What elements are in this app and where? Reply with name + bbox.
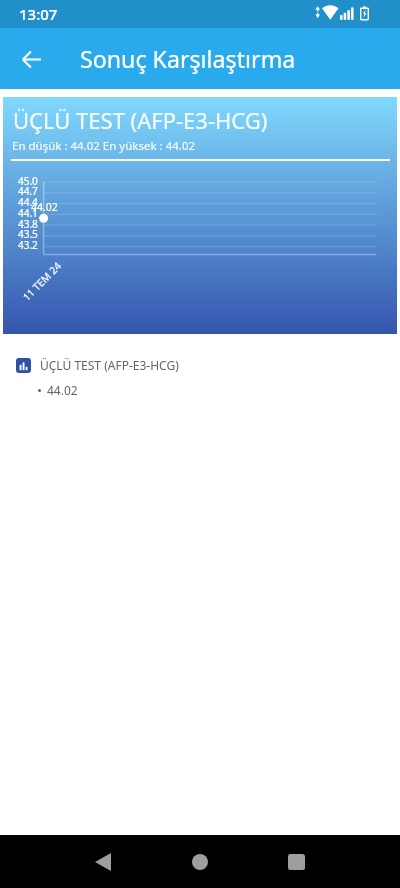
staticText: En düşük : 44.02 En yüksek : 44.02 xyxy=(12,138,196,154)
staticText: 43.2 xyxy=(18,238,38,252)
button[interactable]: Back xyxy=(79,838,127,886)
staticText: 44.02 xyxy=(31,200,58,214)
staticText: Sonuç Karşılaştırma xyxy=(80,43,296,75)
button[interactable]: Recent apps xyxy=(272,838,320,886)
staticText: 44.1 xyxy=(18,206,38,220)
staticText: ÜÇLÜ TEST (AFP-E3-HCG) xyxy=(13,105,268,135)
staticText: 13:07 xyxy=(19,4,58,24)
staticText: 45.0 xyxy=(18,174,38,188)
staticText: 44.4 xyxy=(18,195,38,209)
staticText: 43.5 xyxy=(18,227,38,241)
staticText: 44.02 xyxy=(47,382,78,398)
button[interactable]: Home xyxy=(176,838,224,886)
staticText: ÜÇLÜ TEST (AFP-E3-HCG) xyxy=(40,357,179,373)
staticText: 11 TEM 24 xyxy=(19,258,65,304)
button[interactable]: Back xyxy=(7,35,55,83)
button[interactable]: ÜÇLÜ TEST (AFP-E3-HCG) xyxy=(0,357,400,398)
staticText: 44.7 xyxy=(18,184,38,198)
staticText: 43.8 xyxy=(18,217,38,231)
